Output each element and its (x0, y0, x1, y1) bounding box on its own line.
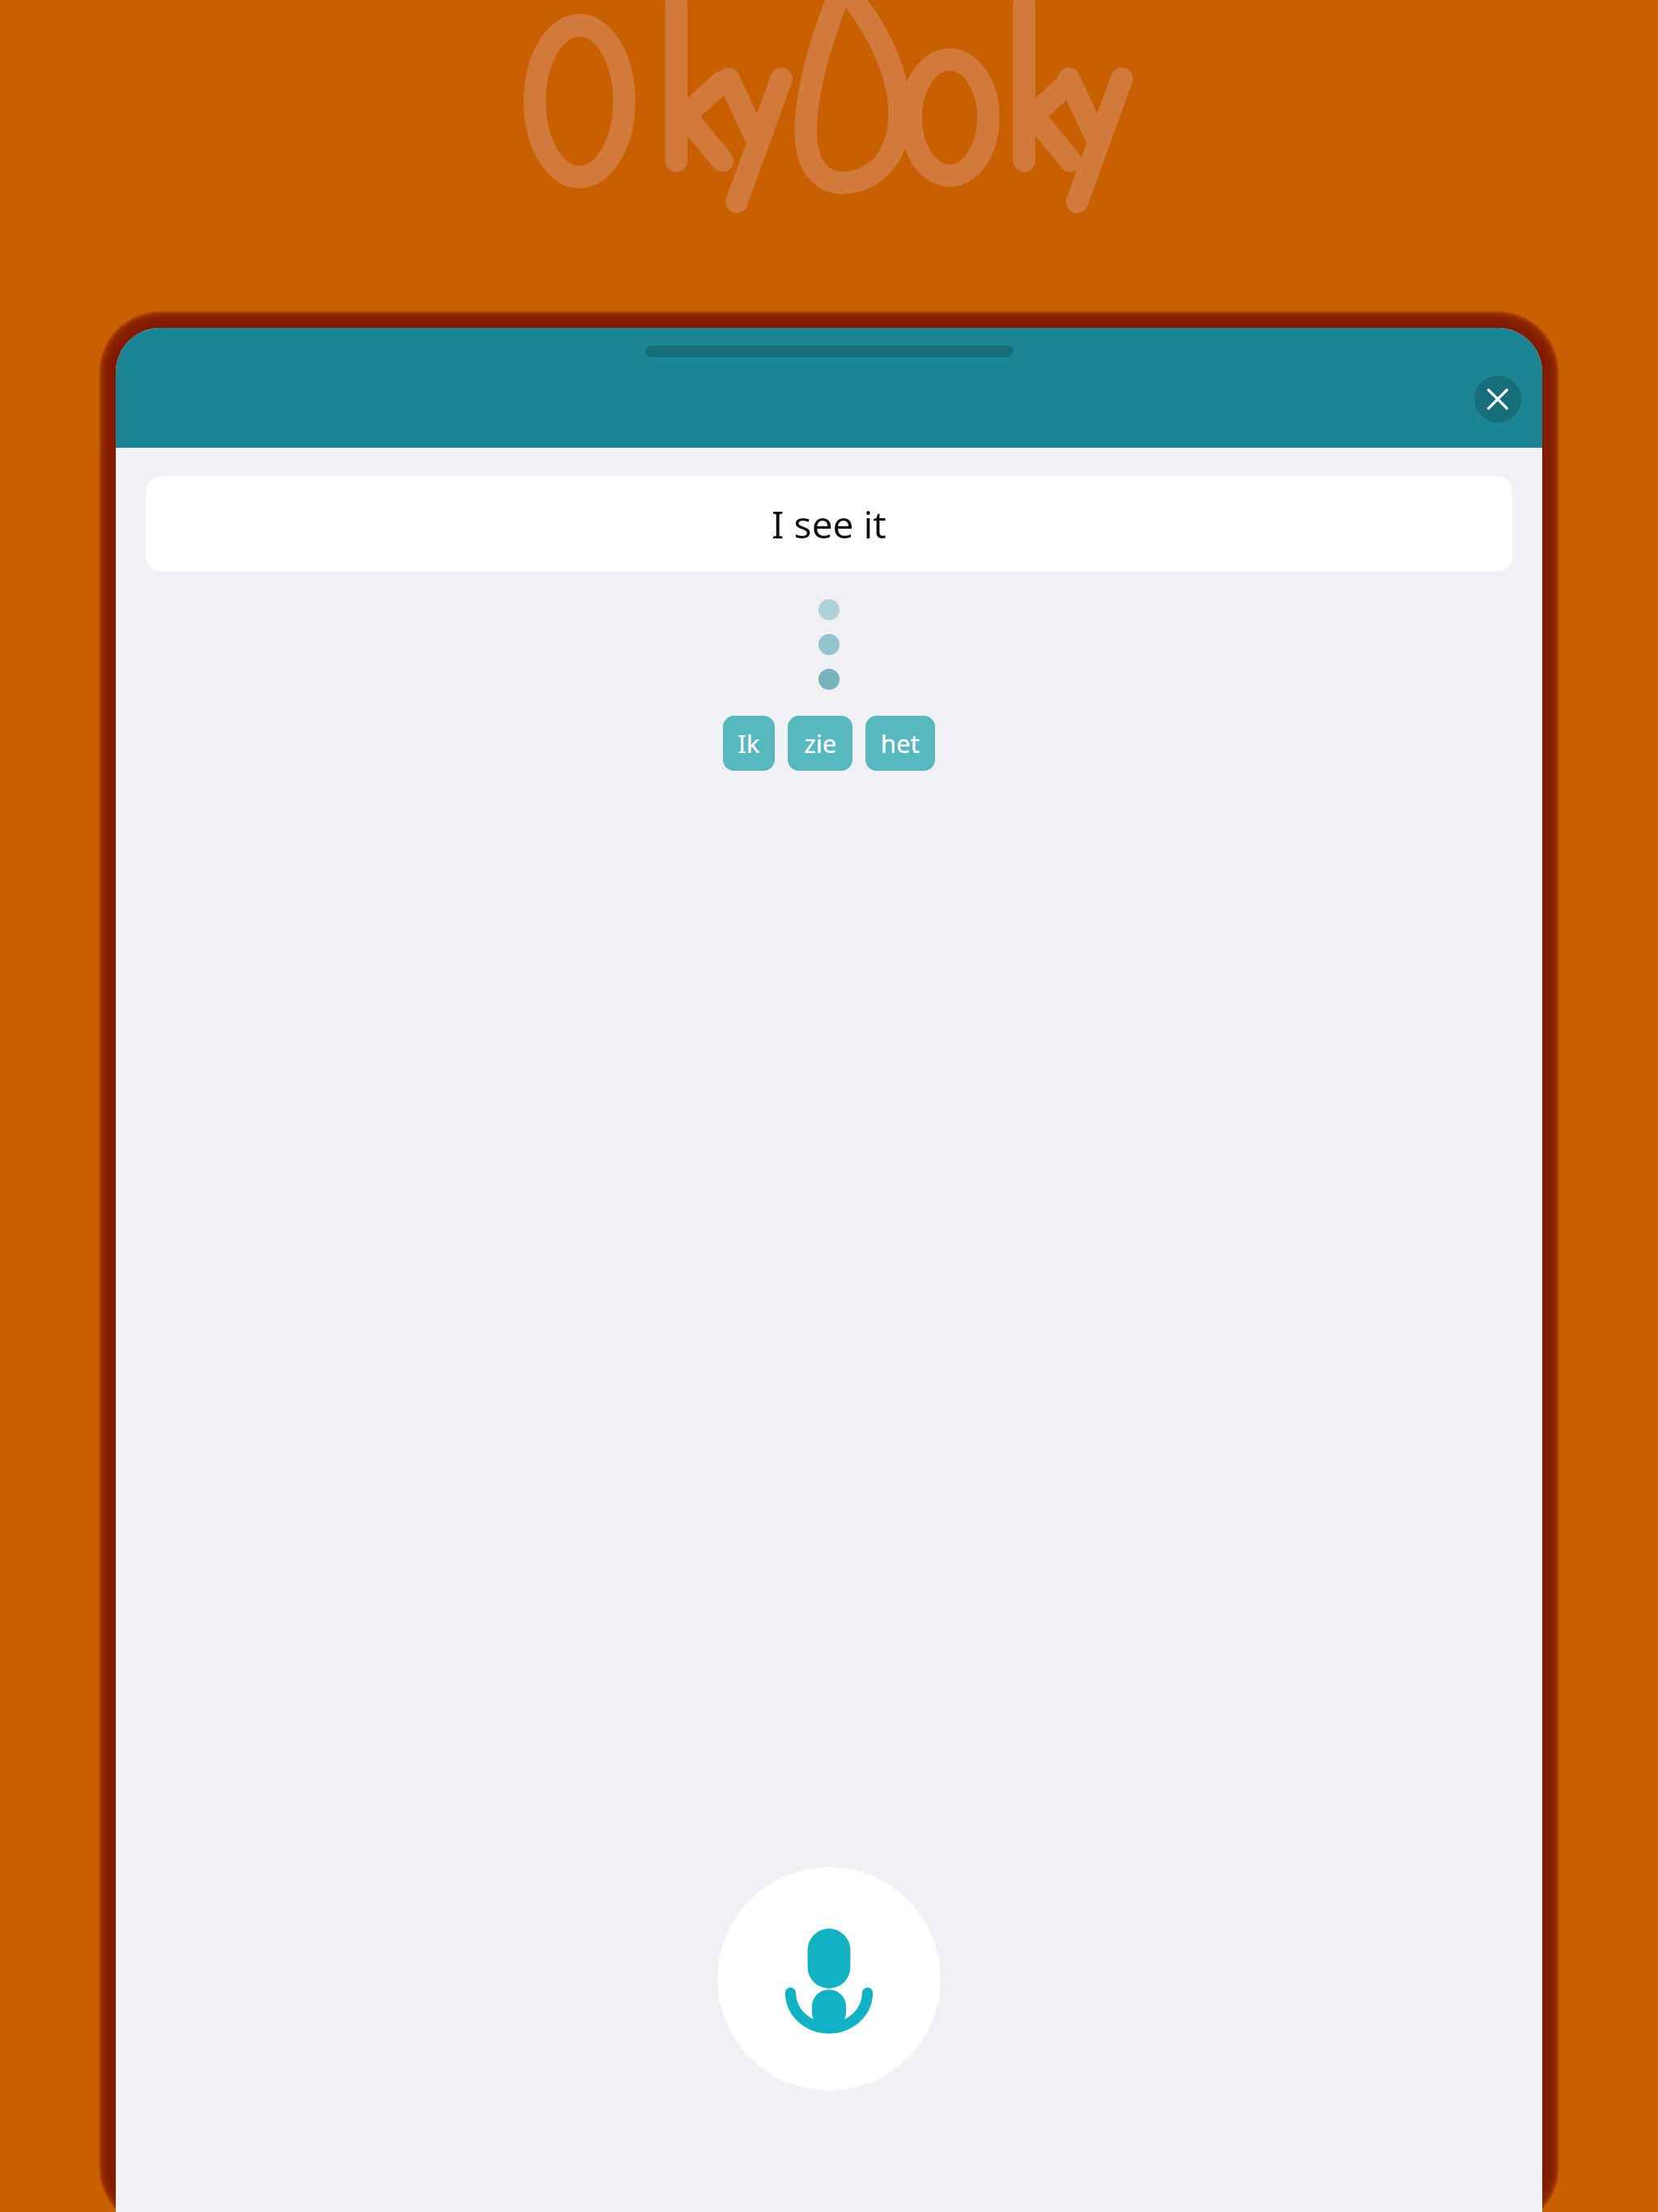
staticText: I see it (772, 499, 886, 550)
button[interactable]: het (865, 716, 935, 771)
button[interactable]: Ik (723, 716, 775, 771)
staticText: Ik (738, 726, 760, 760)
staticText: zie (804, 726, 837, 760)
button[interactable]: I see it (146, 476, 1512, 572)
button[interactable]: Close (1474, 376, 1521, 423)
button[interactable]: zie (788, 716, 852, 771)
button[interactable]: Start voice recording (717, 1867, 941, 2091)
staticText: het (881, 726, 920, 760)
